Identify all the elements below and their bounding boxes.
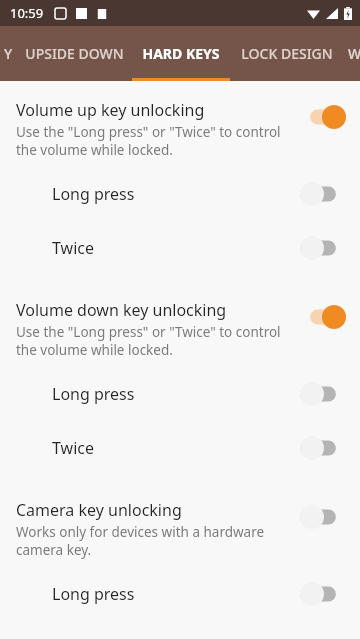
staticText: UPSIDE DOWN <box>25 44 124 63</box>
button[interactable]: Toggle on <box>300 105 346 129</box>
staticText: Use the "Long press" or "Twice" to contr… <box>16 123 281 159</box>
button[interactable]: Toggle on <box>300 305 346 329</box>
button[interactable]: Twice <box>0 221 360 275</box>
staticText: Long press <box>52 383 300 405</box>
button[interactable]: HARD KEYS <box>132 26 230 81</box>
button[interactable]: Volume down key unlocking <box>0 291 360 367</box>
staticText: Y <box>4 44 13 63</box>
staticText: Camera key unlocking <box>16 499 182 521</box>
staticText: W <box>348 44 360 63</box>
button[interactable]: Toggle off <box>300 236 346 260</box>
button[interactable]: Long press <box>0 167 360 221</box>
button[interactable]: Toggle off <box>300 505 346 529</box>
staticText: LOCK DESIGN <box>241 44 333 63</box>
button[interactable]: Toggle off <box>300 382 346 406</box>
button[interactable]: Long press <box>0 367 360 421</box>
staticText: Long press <box>52 583 300 605</box>
staticText: 10:59 <box>10 4 44 22</box>
staticText: Twice <box>52 437 300 459</box>
staticText: Twice <box>52 237 300 259</box>
button[interactable]: Long press <box>0 567 360 621</box>
button[interactable]: LOCK DESIGN <box>230 26 344 81</box>
staticText: Use the "Long press" or "Twice" to contr… <box>16 323 281 359</box>
button[interactable]: Y <box>0 26 16 81</box>
button[interactable]: W <box>344 26 360 81</box>
button[interactable]: Volume up key unlocking <box>0 91 360 167</box>
staticText: Long press <box>52 183 300 205</box>
staticText: Volume down key unlocking <box>16 299 227 321</box>
button[interactable]: Toggle off <box>300 182 346 206</box>
button[interactable]: UPSIDE DOWN <box>16 26 132 81</box>
staticText: HARD KEYS <box>142 44 220 63</box>
button[interactable]: Twice <box>0 421 360 475</box>
button[interactable]: Toggle off <box>300 582 346 606</box>
staticText: Volume up key unlocking <box>16 99 205 121</box>
button[interactable]: Camera key unlocking <box>0 491 360 567</box>
staticText: Works only for devices with a hardware c… <box>16 523 265 559</box>
button[interactable]: Toggle off <box>300 436 346 460</box>
